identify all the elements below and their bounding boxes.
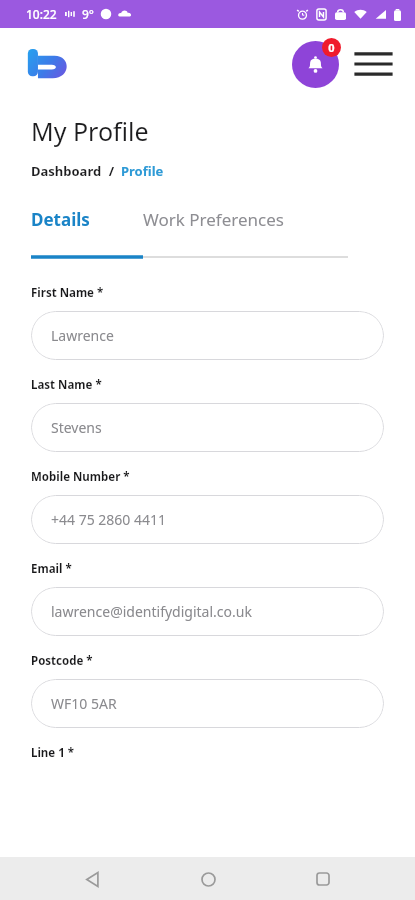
button[interactable]: Profile <box>121 162 164 180</box>
staticText: Postcode * <box>31 653 93 669</box>
staticText: 0 <box>328 40 335 55</box>
staticText: Mobile Number * <box>31 469 130 485</box>
button[interactable]: +44 75 2860 4411 <box>31 495 384 544</box>
staticText: lawrence@identifydigital.co.uk <box>51 602 252 621</box>
button[interactable]: Identify Digital home <box>26 47 72 81</box>
staticText: Dashboard <box>31 162 102 180</box>
button[interactable]: Recent apps <box>303 859 343 899</box>
staticText: / <box>102 162 121 180</box>
staticText: Line 1 * <box>31 745 74 761</box>
staticText: +44 75 2860 4411 <box>51 510 167 529</box>
staticText: Details <box>31 208 90 231</box>
staticText: First Name * <box>31 285 104 301</box>
staticText: Last Name * <box>31 377 102 393</box>
staticText: My Profile <box>31 114 149 148</box>
button[interactable]: Stevens <box>31 403 384 452</box>
staticText: 9° <box>82 6 94 22</box>
button[interactable]: Menu <box>351 42 395 86</box>
staticText: 10:22 <box>26 6 57 22</box>
button[interactable]: lawrence@identifydigital.co.uk <box>31 587 384 636</box>
button[interactable]: Notifications <box>287 36 343 92</box>
staticText: Work Preferences <box>143 208 284 231</box>
button[interactable]: Details <box>31 204 143 234</box>
button[interactable]: Home <box>188 859 228 899</box>
staticText: WF10 5AR <box>51 694 117 713</box>
button[interactable]: Dashboard <box>31 162 102 180</box>
button[interactable]: Work Preferences <box>143 204 284 234</box>
button[interactable]: WF10 5AR <box>31 679 384 728</box>
staticText: Stevens <box>51 418 102 437</box>
button[interactable]: Lawrence <box>31 311 384 360</box>
staticText: Lawrence <box>51 326 114 345</box>
staticText: Profile <box>121 162 164 180</box>
button[interactable]: Back <box>72 859 112 899</box>
staticText: Email * <box>31 561 72 577</box>
